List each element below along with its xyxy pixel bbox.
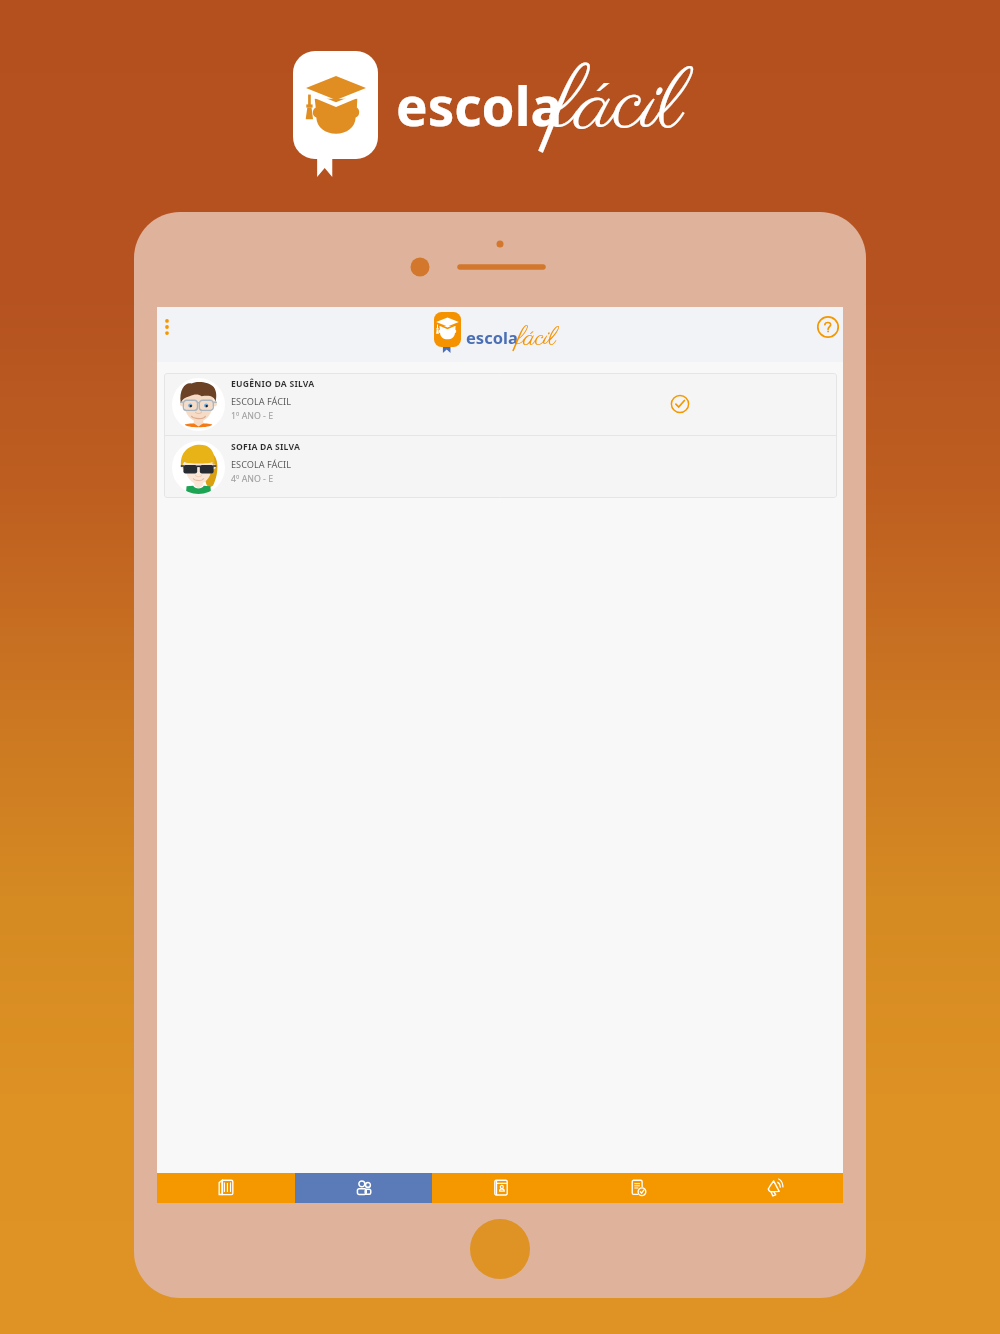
- button[interactable]: Agenda: [157, 1173, 295, 1203]
- staticText: ESCOLA FÁCIL: [231, 395, 292, 408]
- staticText: fácil: [517, 320, 556, 355]
- staticText: EUGÊNIO DA SILVA: [231, 378, 315, 390]
- button[interactable]: Avisos: [706, 1173, 843, 1203]
- staticText: escola: [396, 69, 563, 141]
- button[interactable]: Tarefas: [569, 1173, 706, 1203]
- button[interactable]: Alunos: [295, 1173, 432, 1203]
- button[interactable]: SOFIA DA SILVA: [164, 436, 837, 498]
- staticText: escola: [466, 326, 518, 348]
- staticText: ESCOLA FÁCIL: [231, 458, 292, 471]
- button[interactable]: Selected student: [665, 389, 695, 419]
- button[interactable]: Carteirinha: [432, 1173, 569, 1203]
- staticText: fácil: [554, 48, 683, 165]
- button[interactable]: EUGÊNIO DA SILVA: [164, 373, 837, 435]
- button[interactable]: Help: [814, 313, 842, 341]
- staticText: SOFIA DA SILVA: [231, 441, 301, 453]
- button[interactable]: Menu: [158, 309, 176, 345]
- staticText: 4º ANO - E: [231, 473, 274, 485]
- staticText: 1º ANO - E: [231, 410, 274, 422]
